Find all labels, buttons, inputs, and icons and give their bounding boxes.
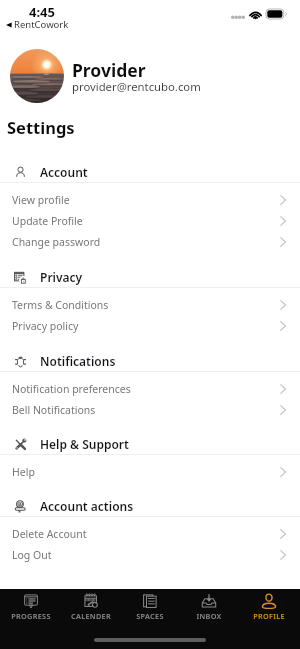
button[interactable]: Progress	[3, 594, 59, 622]
button[interactable]: Terms & Conditions	[0, 294, 300, 315]
button[interactable]: Notification preferences	[0, 378, 300, 399]
button[interactable]: Help	[0, 461, 300, 482]
other: Progress	[23, 593, 39, 609]
staticText: Privacy policy	[12, 319, 79, 333]
staticText: Help & Support	[40, 436, 129, 452]
staticText: 4:45	[29, 3, 55, 21]
staticText: INBOX	[196, 611, 222, 621]
button[interactable]: Calender	[63, 594, 119, 622]
staticText: Change password	[12, 235, 101, 249]
staticText: Provider	[72, 58, 146, 82]
staticText: Notifications	[40, 353, 116, 369]
button[interactable]: Profile	[241, 594, 297, 622]
staticText: Account	[40, 164, 88, 180]
staticText: Settings	[7, 116, 75, 138]
staticText: Privacy	[40, 269, 83, 285]
button[interactable]: Log Out	[0, 544, 300, 565]
staticText: PROFILE	[253, 611, 285, 621]
staticText: provider@rentcubo.com	[72, 79, 201, 94]
staticText: Bell Notifications	[12, 403, 96, 417]
staticText: Log Out	[12, 548, 52, 562]
button[interactable]: Inbox	[181, 594, 237, 622]
staticText: Help	[12, 465, 35, 479]
staticText: Update Profile	[12, 214, 83, 228]
staticText: PROGRESS	[11, 611, 51, 621]
other: Inbox	[201, 593, 217, 609]
button[interactable]: View profile	[0, 189, 300, 210]
other: Profile	[261, 593, 277, 609]
other: Spaces	[142, 593, 158, 609]
staticText: CALENDER	[71, 611, 111, 621]
staticText: RentCowork	[14, 18, 69, 31]
button[interactable]: Privacy policy	[0, 315, 300, 336]
staticText: Notification preferences	[12, 382, 131, 396]
staticText: View profile	[12, 193, 70, 207]
staticText: SPACES	[136, 611, 164, 621]
button[interactable]: Bell Notifications	[0, 399, 300, 420]
staticText: Account actions	[40, 498, 134, 514]
staticText: Terms & Conditions	[12, 298, 109, 312]
button[interactable]: Delete Account	[0, 523, 300, 544]
staticText: Delete Account	[12, 527, 87, 541]
button[interactable]: Spaces	[122, 594, 178, 622]
other: Calender	[83, 593, 99, 609]
button[interactable]: Change password	[0, 231, 300, 252]
button[interactable]: Update Profile	[0, 210, 300, 231]
